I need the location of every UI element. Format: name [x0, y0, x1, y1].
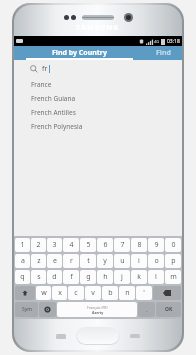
- button[interactable]: 1: [15, 238, 30, 252]
- button[interactable]: y: [97, 254, 113, 268]
- button[interactable]: b: [102, 286, 118, 300]
- staticText: ': [143, 288, 145, 298]
- staticText: g: [86, 272, 91, 282]
- staticText: a: [21, 256, 25, 266]
- button[interactable]: d: [47, 270, 62, 284]
- button[interactable]: i: [131, 254, 147, 268]
- button[interactable]: a: [15, 254, 30, 268]
- button[interactable]: m: [165, 270, 181, 284]
- staticText: France: [31, 80, 52, 89]
- button[interactable]: h: [97, 270, 113, 284]
- staticText: 7: [120, 240, 125, 250]
- button[interactable]: Search: [14, 60, 182, 77]
- button[interactable]: 7: [114, 238, 130, 252]
- button[interactable]: z: [31, 254, 46, 268]
- staticText: y: [103, 256, 107, 266]
- button[interactable]: g: [80, 270, 96, 284]
- staticText: 3: [52, 240, 57, 250]
- button[interactable]: Français (FR): [57, 302, 137, 317]
- staticText: w: [41, 288, 47, 298]
- staticText: Français (FR): [87, 305, 108, 310]
- staticText: u: [120, 256, 125, 266]
- button[interactable]: French Polynesia: [14, 119, 182, 133]
- button[interactable]: Home: [76, 326, 120, 345]
- staticText: t: [87, 256, 90, 266]
- button[interactable]: French Antilles: [14, 105, 182, 119]
- staticText: 6: [103, 240, 108, 250]
- staticText: i: [138, 256, 140, 266]
- staticText: j: [121, 272, 123, 282]
- staticText: French Antilles: [31, 108, 76, 117]
- button[interactable]: Settings: [39, 302, 56, 317]
- staticText: s: [37, 272, 41, 282]
- button[interactable]: l: [148, 270, 164, 284]
- button[interactable]: r: [63, 254, 79, 268]
- staticText: v: [91, 288, 95, 298]
- button[interactable]: 8: [131, 238, 147, 252]
- staticText: Sym: [22, 306, 32, 313]
- button[interactable]: e: [47, 254, 62, 268]
- button[interactable]: Back: [120, 328, 150, 344]
- button[interactable]: t: [80, 254, 96, 268]
- staticText: fr: [42, 64, 48, 74]
- staticText: m: [170, 272, 177, 282]
- staticText: f: [70, 272, 73, 282]
- staticText: 8: [137, 240, 142, 250]
- button[interactable]: 2: [31, 238, 46, 252]
- staticText: 4G: [154, 39, 160, 44]
- button[interactable]: 4: [63, 238, 79, 252]
- button[interactable]: Backspace: [153, 286, 181, 300]
- button[interactable]: x: [52, 286, 67, 300]
- staticText: b: [108, 288, 113, 298]
- button[interactable]: Find by Country: [14, 46, 145, 60]
- staticText: h: [103, 272, 108, 282]
- staticText: o: [154, 256, 159, 266]
- button[interactable]: French Guiana: [14, 91, 182, 105]
- staticText: p: [171, 256, 176, 266]
- button[interactable]: n: [119, 286, 135, 300]
- button[interactable]: 3: [47, 238, 62, 252]
- button[interactable]: 0: [165, 238, 181, 252]
- button[interactable]: o: [148, 254, 164, 268]
- button[interactable]: 5: [80, 238, 96, 252]
- staticText: 5: [86, 240, 91, 250]
- button[interactable]: Recent apps: [46, 328, 76, 344]
- other: Search: [30, 65, 38, 73]
- staticText: SAMSUNG: [76, 23, 120, 33]
- staticText: French Guiana: [31, 94, 76, 103]
- staticText: k: [137, 272, 141, 282]
- staticText: OK: [165, 306, 173, 313]
- button[interactable]: p: [165, 254, 181, 268]
- staticText: e: [53, 256, 57, 266]
- button[interactable]: w: [36, 286, 51, 300]
- button[interactable]: u: [114, 254, 130, 268]
- staticText: 0: [171, 240, 176, 250]
- button[interactable]: Symbols: [15, 302, 38, 317]
- staticText: 9: [154, 240, 159, 250]
- button[interactable]: k: [131, 270, 147, 284]
- staticText: Find: [156, 48, 171, 58]
- staticText: l: [155, 272, 157, 282]
- button[interactable]: v: [85, 286, 101, 300]
- button[interactable]: OK: [156, 302, 181, 317]
- staticText: 4: [69, 240, 74, 250]
- button[interactable]: c: [68, 286, 84, 300]
- staticText: 2: [36, 240, 41, 250]
- staticText: 1: [20, 240, 25, 250]
- button[interactable]: Shift: [15, 286, 35, 300]
- staticText: r: [70, 256, 73, 266]
- button[interactable]: j: [114, 270, 130, 284]
- button[interactable]: France: [14, 77, 182, 91]
- staticText: z: [37, 256, 41, 266]
- staticText: 03:18: [167, 38, 180, 45]
- button[interactable]: ': [136, 286, 152, 300]
- button[interactable]: 6: [97, 238, 113, 252]
- button[interactable]: f: [63, 270, 79, 284]
- staticText: q: [20, 272, 25, 282]
- button[interactable]: q: [15, 270, 30, 284]
- button[interactable]: Find: [145, 46, 182, 60]
- staticText: Find by Country: [52, 48, 107, 58]
- button[interactable]: s: [31, 270, 46, 284]
- button[interactable]: 9: [148, 238, 164, 252]
